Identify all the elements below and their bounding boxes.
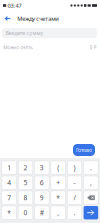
staticText: ) [73, 163, 75, 172]
button[interactable]: , [51, 206, 65, 219]
staticText: 1 [7, 163, 11, 172]
staticText: 2 [23, 163, 27, 172]
staticText: ( [57, 163, 59, 172]
button[interactable]: Enter [84, 206, 98, 219]
button[interactable]: ( [51, 161, 65, 174]
staticText: . [90, 163, 92, 172]
staticText: 3 [40, 163, 44, 172]
button[interactable]: 3 [35, 161, 49, 174]
button[interactable]: . [67, 206, 82, 219]
button[interactable]: 5 [18, 176, 33, 189]
button[interactable]: + [51, 176, 65, 189]
button[interactable]: * [2, 206, 16, 219]
button[interactable]: 7 [2, 191, 16, 204]
staticText: - [73, 178, 75, 187]
button[interactable]: Введите сумму [2, 28, 97, 38]
staticText: 7 [7, 193, 11, 202]
button[interactable]: Готово [73, 144, 95, 156]
button[interactable]: . [84, 161, 98, 174]
button[interactable]: - [67, 176, 82, 189]
staticText: Введите сумму [5, 29, 43, 37]
button[interactable]: Backspace [84, 191, 98, 204]
staticText: Между счетами [17, 15, 59, 22]
staticText: Готово [76, 146, 92, 154]
staticText: 4 [7, 178, 11, 187]
staticText: , [57, 208, 59, 217]
staticText: / [73, 193, 75, 202]
button[interactable]: 6 [35, 176, 49, 189]
staticText: * [7, 208, 11, 217]
staticText: 0 P [90, 44, 97, 51]
button[interactable]: ) [67, 161, 82, 174]
button[interactable]: / [67, 191, 82, 204]
staticText: # [40, 208, 44, 217]
staticText: , [90, 178, 92, 187]
staticText: 5 [23, 178, 27, 187]
staticText: * [56, 193, 60, 202]
staticText: 9 [40, 193, 44, 202]
button[interactable]: 1 [2, 161, 16, 174]
staticText: + [56, 178, 60, 187]
button[interactable]: 4 [2, 176, 16, 189]
button[interactable]: , [84, 176, 98, 189]
staticText: 03:47 [7, 2, 21, 9]
button[interactable]: 9 [35, 191, 49, 204]
button[interactable]: 2 [18, 161, 33, 174]
staticText: 6 [40, 178, 44, 187]
button[interactable]: # [35, 206, 49, 219]
staticText: Можно снять [3, 44, 32, 51]
staticText: 0 [23, 208, 27, 217]
button[interactable]: 8 [18, 191, 33, 204]
staticText: 8 [23, 193, 27, 202]
staticText: . [73, 208, 75, 217]
button[interactable]: 0 [18, 206, 33, 219]
button[interactable]: * [51, 191, 65, 204]
button[interactable]: Back [2, 13, 14, 24]
